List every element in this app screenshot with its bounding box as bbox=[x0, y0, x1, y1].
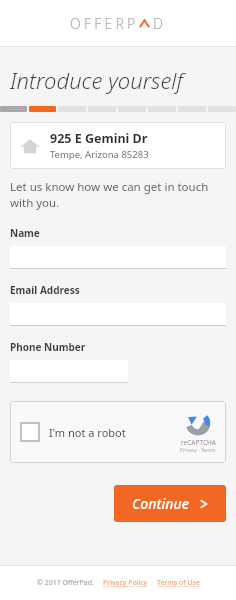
staticText: Continue bbox=[132, 494, 189, 513]
button[interactable] bbox=[10, 303, 226, 326]
staticText: Let us know how we can get in touch with… bbox=[10, 179, 209, 210]
button[interactable]: Continue bbox=[114, 485, 226, 522]
staticText: Tempe, Arizona 85283 bbox=[50, 148, 149, 161]
button[interactable]: I'm not a robot bbox=[10, 401, 226, 463]
staticText: Email Address bbox=[10, 283, 80, 297]
button[interactable]: Terms of Use bbox=[157, 578, 200, 588]
staticText: Privacy - Terms bbox=[180, 447, 216, 454]
button[interactable] bbox=[10, 246, 226, 269]
staticText: © 2017 OfferPad. bbox=[37, 578, 94, 588]
staticText: I'm not a robot bbox=[49, 425, 126, 440]
button[interactable]: 925 E Gemini Dr bbox=[10, 122, 226, 169]
staticText: OFFERP bbox=[70, 14, 139, 33]
staticText: Phone Number bbox=[10, 340, 86, 354]
button[interactable] bbox=[10, 360, 128, 383]
staticText: Introduce yourself bbox=[10, 65, 183, 95]
button[interactable]: Privacy Policy bbox=[103, 578, 148, 588]
staticText: reCAPTCHA bbox=[181, 438, 216, 447]
staticText: 925 E Gemini Dr bbox=[50, 130, 148, 147]
staticText: D bbox=[153, 14, 167, 33]
staticText: Name bbox=[10, 226, 40, 240]
other: reCAPTCHA logo bbox=[185, 410, 211, 436]
